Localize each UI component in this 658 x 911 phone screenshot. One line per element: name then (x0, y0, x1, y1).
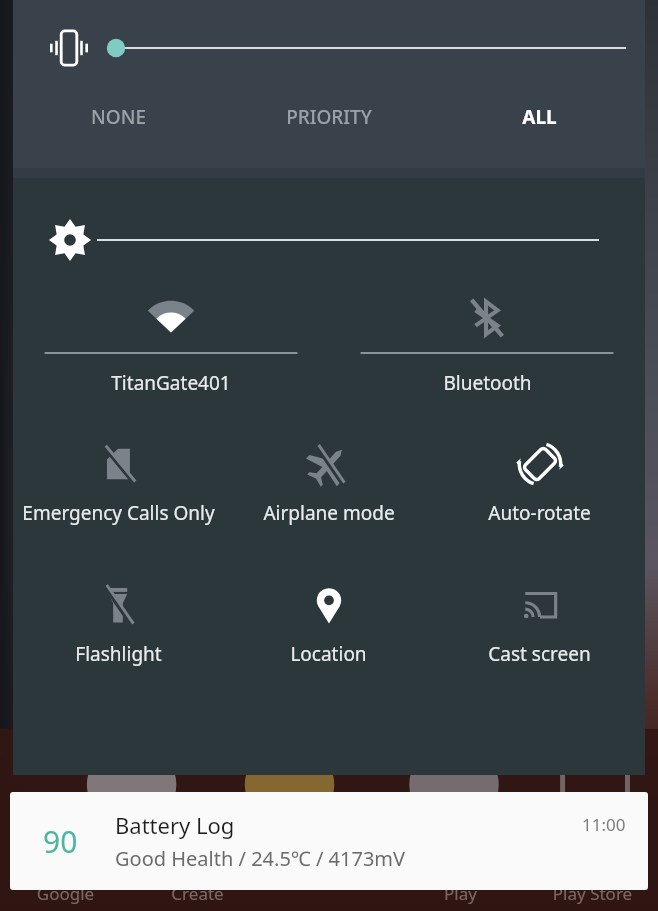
button[interactable]: ALL (434, 104, 645, 130)
staticText: ALL (522, 104, 557, 130)
staticText: Google (0, 882, 131, 905)
staticText: TitanGate401 (111, 370, 231, 396)
staticText: NONE (91, 104, 146, 130)
button[interactable]: 90 (10, 792, 648, 890)
button[interactable]: Auto-rotate (434, 428, 645, 526)
button[interactable]: Bluetooth (329, 290, 645, 396)
staticText: 11:00 (582, 813, 626, 836)
staticText: Play (395, 882, 526, 905)
staticText: Good Health / 24.5℃ / 4173mV (115, 845, 406, 872)
button[interactable]: TitanGate401 (13, 290, 329, 396)
button[interactable]: Cast screen (434, 569, 645, 667)
button[interactable]: PRIORITY (223, 104, 434, 130)
staticText: Battery Log (115, 810, 235, 840)
staticText: Bluetooth (443, 370, 532, 396)
staticText: Auto-rotate (488, 500, 591, 526)
button[interactable]: Ringer mode vibrate (43, 30, 95, 66)
staticText: PRIORITY (286, 104, 372, 130)
staticText: 90 (43, 821, 78, 862)
staticText: Create (132, 882, 263, 905)
staticText: Cast screen (488, 641, 591, 667)
button[interactable]: Airplane mode (223, 428, 434, 526)
button[interactable]: Location (223, 569, 434, 667)
staticText: Airplane mode (263, 500, 395, 526)
staticText: Play Store (527, 882, 658, 905)
staticText (264, 882, 395, 905)
staticText: Emergency Calls Only (22, 500, 215, 526)
button[interactable]: NONE (13, 104, 223, 130)
button[interactable]: Brightness (48, 218, 92, 262)
button[interactable]: Emergency Calls Only (13, 428, 223, 526)
button[interactable]: Flashlight (13, 569, 223, 667)
staticText: Location (290, 641, 367, 667)
staticText: Flashlight (75, 641, 162, 667)
